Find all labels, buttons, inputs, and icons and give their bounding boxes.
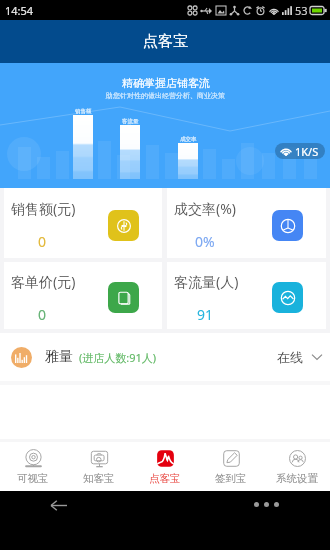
staticText: 系统设置 xyxy=(276,472,318,485)
staticText: 可视宝 xyxy=(17,472,49,485)
staticText: 点客宝 xyxy=(143,32,188,51)
staticText: 签到宝 xyxy=(215,472,247,485)
staticText: 在线 xyxy=(277,349,303,365)
other: Recents xyxy=(254,502,279,507)
staticText: 助您针对性的做出经营分析、商业决策 xyxy=(106,91,225,100)
button[interactable]: 可视宝 xyxy=(0,442,66,491)
staticText: 14:54 xyxy=(5,3,34,18)
staticText: 销售额(元) xyxy=(11,199,76,218)
staticText: 0 xyxy=(38,232,47,251)
button[interactable]: 销售额(元) xyxy=(4,188,162,258)
staticText: 成交率(%) xyxy=(174,199,237,218)
staticText: 成交率 xyxy=(180,136,197,143)
staticText: 客单价(元) xyxy=(11,272,76,291)
staticText: 知客宝 xyxy=(83,472,115,485)
button[interactable]: 签到宝 xyxy=(198,442,264,491)
staticText: 0 xyxy=(38,305,47,324)
button[interactable]: 系统设置 xyxy=(264,442,330,491)
staticText: 雅量 xyxy=(45,348,73,366)
staticText: 客流量(人) xyxy=(174,272,239,291)
button[interactable]: 雅量 xyxy=(0,333,330,381)
staticText: 0% xyxy=(195,232,215,251)
staticText: (进店人数:91人) xyxy=(79,350,157,365)
button[interactable]: 客流量(人) xyxy=(167,262,326,329)
staticText: 91 xyxy=(197,305,214,324)
button[interactable]: 知客宝 xyxy=(66,442,132,491)
staticText: 销售额 xyxy=(75,108,92,115)
button[interactable]: 1K/S xyxy=(275,143,325,159)
staticText: 53 xyxy=(295,3,308,18)
other: Back xyxy=(50,499,67,512)
staticText: 点客宝 xyxy=(149,472,181,485)
button[interactable]: 成交率(%) xyxy=(167,188,326,258)
button[interactable]: 点客宝 xyxy=(132,442,198,491)
button[interactable]: 客单价(元) xyxy=(4,262,162,329)
staticText: 客流量 xyxy=(122,118,139,125)
staticText: 精确掌握店铺客流 xyxy=(122,76,210,90)
staticText: 1K/S xyxy=(295,144,319,159)
